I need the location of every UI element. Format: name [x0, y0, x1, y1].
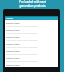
staticText: Product name — [6, 36, 20, 39]
staticText: generation products — [19, 4, 46, 8]
staticText: Pro loaded with next — [19, 0, 46, 4]
staticText: Product name — [6, 29, 20, 32]
staticText: Product name — [6, 43, 20, 46]
button[interactable]: Product name — [5, 49, 58, 56]
button[interactable]: Product name — [5, 63, 58, 67]
staticText: Catalog — [6, 17, 13, 20]
button[interactable]: Product name — [5, 42, 58, 49]
button[interactable]: Product name — [5, 56, 58, 63]
staticText: Lorem ipsum dolor sit amet consectetur — [6, 39, 38, 41]
staticText: Lorem ipsum dolor sit amet consectetur — [6, 60, 38, 62]
staticText: Lorem ipsum dolor sit amet consectetur — [6, 25, 38, 27]
staticText: Lorem ipsum dolor sit amet consectetur — [6, 32, 38, 34]
button[interactable]: Product name — [5, 28, 58, 35]
staticText: Product name — [6, 22, 20, 25]
staticText: Lorem ipsum dolor sit amet consectetur — [6, 46, 38, 48]
button[interactable]: Catalog — [5, 17, 58, 20]
staticText: Product name — [6, 64, 20, 67]
staticText: Product name — [6, 57, 20, 60]
button[interactable]: Product name — [5, 21, 58, 28]
button[interactable]: Product name — [5, 35, 58, 42]
staticText: Product name — [6, 50, 20, 53]
staticText: Lorem ipsum dolor sit amet consectetur — [6, 53, 38, 55]
